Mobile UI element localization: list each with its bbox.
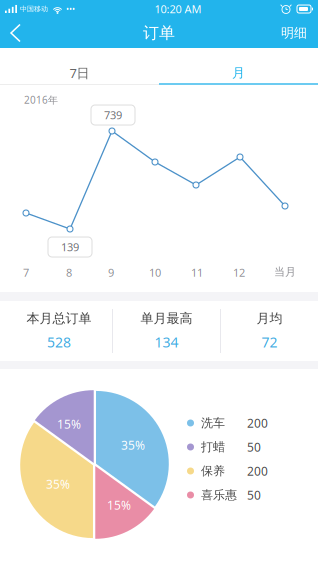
staticText: 739 <box>104 107 122 122</box>
button[interactable]: Back <box>0 18 31 47</box>
staticText: 订单 <box>143 23 175 43</box>
staticText: 11 <box>191 265 203 280</box>
staticText: 9 <box>108 265 114 280</box>
staticText: 打蜡 <box>201 439 225 454</box>
staticText: 单月最高 <box>140 310 192 327</box>
staticText: 保养 <box>201 463 225 478</box>
button[interactable]: 明细 <box>270 19 318 47</box>
staticText: 10 <box>149 265 161 280</box>
button[interactable]: 月 <box>159 48 318 85</box>
staticText: 72 <box>261 333 277 352</box>
staticText: 中国移动 <box>20 5 48 13</box>
staticText: 7日 <box>69 64 89 82</box>
staticText: 35% <box>121 437 145 453</box>
staticText: 当月 <box>274 265 296 279</box>
staticText: 50 <box>247 439 261 455</box>
staticText: 50 <box>247 487 261 503</box>
staticText: 月均 <box>256 310 282 327</box>
staticText: 7 <box>23 265 29 280</box>
staticText: 200 <box>247 415 268 431</box>
staticText: 洗车 <box>201 415 225 430</box>
staticText: 15% <box>107 497 131 513</box>
staticText: ••• <box>66 4 75 14</box>
staticText: 10:20 AM <box>154 1 201 16</box>
staticText: 200 <box>247 463 268 479</box>
staticText: 35% <box>46 476 70 492</box>
staticText: 月 <box>232 65 245 81</box>
staticText: 8 <box>66 265 72 280</box>
button[interactable]: 7日 <box>0 48 159 85</box>
staticText: 139 <box>61 239 79 254</box>
staticText: 本月总订单 <box>26 310 91 327</box>
staticText: 134 <box>154 333 178 352</box>
staticText: 12 <box>233 265 245 280</box>
staticText: 15% <box>57 416 81 432</box>
staticText: 喜乐惠 <box>201 487 237 502</box>
staticText: 528 <box>47 333 71 352</box>
staticText: 明细 <box>281 25 307 41</box>
staticText: 2016年 <box>24 93 58 107</box>
